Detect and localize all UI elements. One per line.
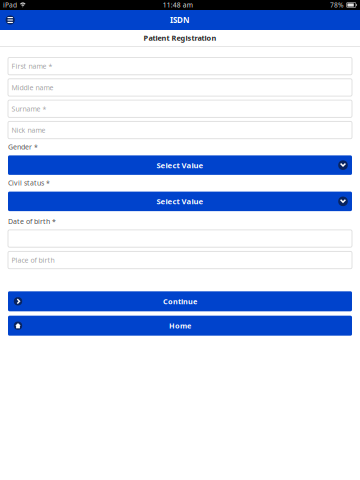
button[interactable]: Surname * [8,100,352,117]
staticText: Nick name [12,125,46,135]
staticText: Surname * [12,104,47,113]
button[interactable]: Continue [8,291,352,311]
staticText: Place of birth [12,255,55,265]
button[interactable]: Date of birth [8,230,352,247]
button[interactable]: First name * [8,57,352,75]
staticText: 78% [330,0,344,10]
button[interactable]: Place of birth [8,251,352,269]
button[interactable]: Menu [0,10,20,30]
button[interactable]: Nick name [8,121,352,139]
staticText: Middle name [12,83,54,92]
staticText: Civil status * [8,178,50,188]
staticText: ISDN [170,15,190,25]
staticText: Patient Registration [143,33,216,43]
staticText: Home [169,321,191,331]
staticText: Date of birth * [8,217,56,226]
button[interactable]: Select Value [8,155,352,175]
button[interactable]: Select Value [8,192,352,211]
button[interactable]: Middle name [8,79,352,96]
staticText: First name * [12,61,53,71]
staticText: Gender * [8,142,38,151]
button[interactable]: Home [8,316,352,336]
staticText: Select Value [156,196,203,207]
staticText: Select Value [156,160,203,170]
staticText: 11:48 am [163,0,193,10]
staticText: Continue [163,296,197,306]
staticText: iPad [3,0,17,10]
